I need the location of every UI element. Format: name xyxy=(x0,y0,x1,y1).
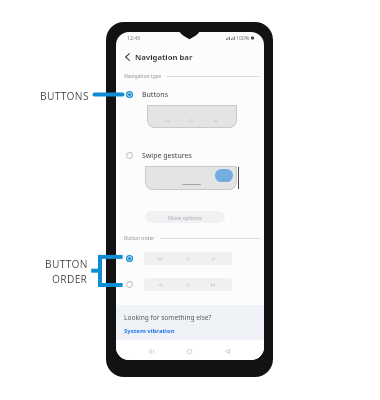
button[interactable]: Home xyxy=(180,342,198,360)
staticText: ORDER xyxy=(52,272,88,286)
staticText: BUTTONS xyxy=(40,89,89,103)
button[interactable] xyxy=(126,252,232,265)
button[interactable] xyxy=(126,278,232,291)
button[interactable]: Back xyxy=(218,342,236,360)
staticText: 12:45 xyxy=(127,34,141,41)
staticText: More options xyxy=(168,214,202,221)
button[interactable]: System vibration xyxy=(124,327,175,335)
button[interactable]: Buttons xyxy=(126,85,241,103)
staticText: Navigation bar xyxy=(135,52,193,62)
button[interactable]: Back xyxy=(120,50,134,64)
staticText: BUTTON xyxy=(45,257,88,271)
staticText: 100% xyxy=(236,34,250,41)
staticText: Swipe gestures xyxy=(142,151,192,160)
staticText: Looking for something else? xyxy=(124,313,212,322)
staticText: Navigation type xyxy=(124,73,162,80)
staticText: Button order xyxy=(124,235,155,242)
button[interactable]: Swipe gestures xyxy=(126,146,241,164)
staticText: Buttons xyxy=(142,90,168,99)
button[interactable]: More options xyxy=(145,211,225,223)
button[interactable]: Recents xyxy=(142,342,160,360)
